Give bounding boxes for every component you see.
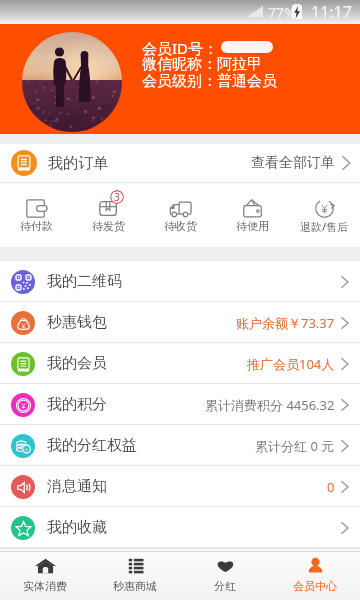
button[interactable]: 我的订单 bbox=[0, 144, 360, 182]
button[interactable]: 秒惠钱包 bbox=[0, 302, 360, 343]
button[interactable]: 3 bbox=[72, 183, 144, 247]
staticText: 秒惠钱包 bbox=[47, 313, 107, 332]
button[interactable]: 我的二维码 bbox=[0, 261, 360, 302]
button[interactable]: 退款/售后 bbox=[288, 183, 360, 247]
staticText: 3 bbox=[114, 190, 120, 204]
staticText: 待收货 bbox=[164, 219, 197, 233]
staticText: 待发货 bbox=[92, 219, 125, 233]
staticText: 待使用 bbox=[236, 219, 269, 233]
staticText: 退款/售后 bbox=[300, 219, 349, 234]
staticText: 会员ID号： bbox=[142, 38, 219, 58]
staticText: 累计消费积分 4456.32 bbox=[205, 396, 335, 414]
button[interactable]: 消息通知 bbox=[0, 466, 360, 507]
staticText: 我的积分 bbox=[47, 395, 107, 414]
staticText: 我的会员 bbox=[47, 354, 107, 373]
staticText: 待付款 bbox=[20, 219, 53, 233]
staticText: 分红 bbox=[214, 579, 236, 593]
button[interactable]: 分红 bbox=[180, 552, 270, 600]
staticText: 累计分红 0 元 bbox=[255, 437, 335, 455]
button[interactable]: 我的分红权益 bbox=[0, 425, 360, 466]
staticText: 会员级别：普通会员 bbox=[142, 72, 277, 91]
button[interactable]: 待付款 bbox=[0, 183, 72, 247]
button[interactable]: 会员中心 bbox=[270, 552, 360, 600]
staticText: 我的订单 bbox=[48, 154, 108, 173]
staticText: 查看全部订单 bbox=[251, 154, 335, 172]
staticText: 微信昵称：阿拉甲 bbox=[142, 55, 262, 74]
staticText: 我的收藏 bbox=[47, 518, 107, 537]
button[interactable]: 秒惠商城 bbox=[90, 552, 180, 600]
staticText: 11:17 bbox=[311, 1, 352, 23]
button[interactable]: 待使用 bbox=[216, 183, 288, 247]
staticText: 我的分红权益 bbox=[47, 436, 137, 455]
button[interactable]: 我的积分 bbox=[0, 384, 360, 425]
staticText: 消息通知 bbox=[47, 477, 107, 496]
button[interactable]: 实体消费 bbox=[0, 552, 90, 600]
staticText: 0 bbox=[327, 478, 335, 496]
button[interactable]: 我的会员 bbox=[0, 343, 360, 384]
staticText: 77% bbox=[268, 3, 296, 22]
staticText: 会员中心 bbox=[293, 579, 337, 593]
staticText: 账户余额￥73.37 bbox=[236, 314, 335, 332]
staticText: 秒惠商城 bbox=[113, 579, 157, 593]
staticText: 实体消费 bbox=[23, 579, 67, 593]
staticText: 我的二维码 bbox=[47, 272, 122, 291]
button[interactable]: 会员头像 bbox=[22, 32, 122, 132]
button[interactable]: 待收货 bbox=[144, 183, 216, 247]
button[interactable]: 我的收藏 bbox=[0, 507, 360, 548]
staticText: 推广会员104人 bbox=[247, 355, 335, 373]
